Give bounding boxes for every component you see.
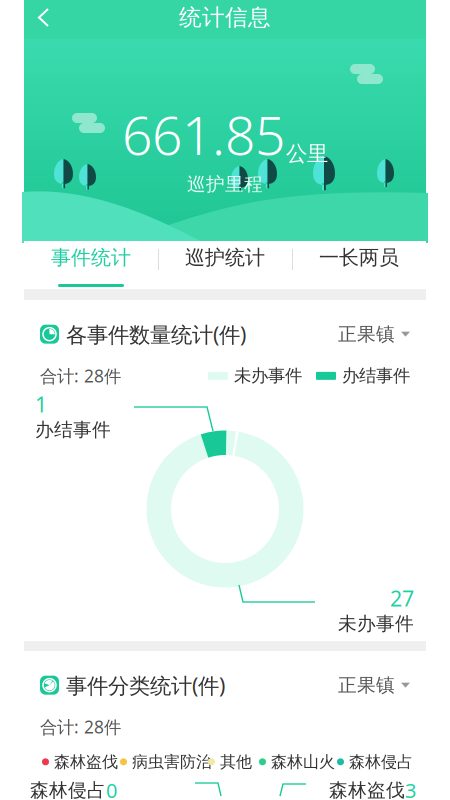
- staticText: 合计: 28件: [40, 364, 121, 387]
- button[interactable]: 一长两员: [292, 241, 426, 289]
- staticText: 其他: [220, 752, 252, 772]
- button[interactable]: Back: [24, 0, 63, 39]
- staticText: 661.85: [122, 99, 285, 170]
- staticText: 巡护统计: [185, 245, 265, 270]
- staticText: 未办事件: [234, 365, 302, 386]
- staticText: 病虫害防治: [132, 752, 212, 772]
- staticText: 森林盗伐: [329, 779, 405, 800]
- staticText: 森林侵占: [349, 752, 413, 772]
- button[interactable]: 正果镇: [338, 323, 410, 346]
- staticText: 1: [35, 390, 47, 418]
- staticText: 事件统计: [51, 245, 131, 270]
- staticText: 公里: [286, 141, 328, 167]
- staticText: 正果镇: [338, 674, 395, 697]
- staticText: 森林盗伐: [54, 752, 118, 772]
- button[interactable]: 巡护统计: [158, 241, 292, 289]
- staticText: 0: [106, 777, 117, 800]
- staticText: 正果镇: [338, 323, 395, 346]
- staticText: 森林侵占: [30, 779, 106, 800]
- staticText: 森林山火: [271, 752, 335, 772]
- staticText: 办结事件: [342, 365, 410, 386]
- staticText: 办结事件: [35, 418, 111, 441]
- staticText: 未办事件: [338, 612, 414, 635]
- button[interactable]: 事件统计: [24, 241, 158, 289]
- staticText: 一长两员: [319, 245, 399, 270]
- staticText: 事件分类统计(件): [66, 671, 225, 699]
- staticText: 3: [405, 777, 416, 800]
- staticText: 27: [390, 584, 414, 612]
- button[interactable]: 正果镇: [338, 674, 410, 697]
- staticText: 统计信息: [179, 4, 271, 31]
- staticText: 合计: 28件: [40, 715, 121, 738]
- staticText: 巡护里程: [187, 173, 263, 196]
- staticText: 各事件数量统计(件): [66, 320, 246, 348]
